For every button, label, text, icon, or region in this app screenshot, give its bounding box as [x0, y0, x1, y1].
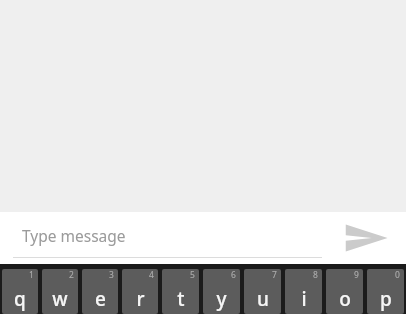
staticText: 8	[313, 269, 318, 281]
staticText: 3	[109, 269, 114, 281]
button[interactable]: Type message	[0, 212, 326, 264]
button[interactable]: 0	[367, 269, 404, 314]
button[interactable]: Send	[326, 212, 406, 264]
staticText: u	[257, 286, 269, 312]
button[interactable]: 1	[2, 269, 38, 314]
staticText: p	[380, 286, 392, 312]
button[interactable]: 2	[42, 269, 78, 314]
staticText: 7	[272, 269, 277, 281]
button[interactable]: 4	[122, 269, 158, 314]
staticText: w	[52, 286, 68, 312]
staticText: 2	[69, 269, 74, 281]
button[interactable]: 8	[285, 269, 322, 314]
staticText: t	[177, 286, 185, 312]
staticText: o	[339, 286, 351, 312]
staticText: i	[301, 286, 307, 312]
staticText: 1	[29, 269, 34, 281]
button[interactable]: 6	[203, 269, 240, 314]
staticText: q	[14, 286, 26, 312]
staticText: 9	[354, 269, 359, 281]
staticText: 4	[149, 269, 154, 281]
staticText: 5	[190, 269, 195, 281]
staticText: Type message	[22, 225, 126, 246]
button[interactable]: 5	[162, 269, 199, 314]
button[interactable]: 9	[326, 269, 363, 314]
staticText: y	[216, 286, 227, 312]
staticText: e	[95, 286, 106, 312]
button[interactable]: 3	[82, 269, 118, 314]
staticText: r	[136, 286, 145, 312]
staticText: 6	[231, 269, 236, 281]
staticText: 0	[395, 269, 400, 281]
button[interactable]: 7	[244, 269, 281, 314]
